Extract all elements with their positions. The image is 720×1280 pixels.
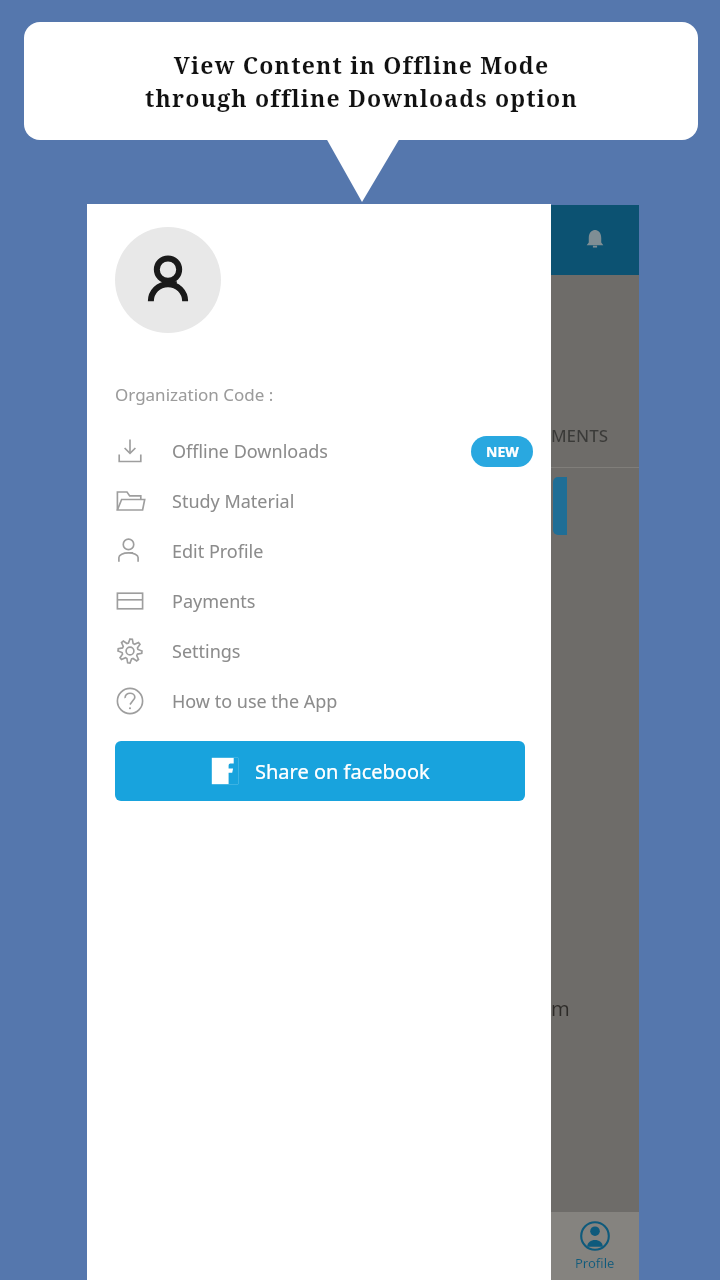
button[interactable]: Profile photo [115,227,221,333]
button[interactable]: Settings [87,626,551,676]
button[interactable]: Share on facebook [115,741,525,801]
button[interactable]: How to use the App [87,676,551,726]
staticText: How to use the App [172,689,338,714]
staticText: View Content in Offline Mode through off… [145,49,578,114]
staticText: Payments [172,589,256,614]
button[interactable]: Study Material [87,476,551,526]
button[interactable]: Profile [551,1212,639,1280]
staticText: MENTS [551,424,609,447]
button[interactable]: Notifications [551,205,639,275]
staticText: Settings [172,639,241,664]
staticText: m [551,995,570,1021]
staticText: NEW [486,442,519,461]
staticText: Study Material [172,489,295,514]
staticText: Offline Downloads [172,439,328,464]
button[interactable]: Edit Profile [87,526,551,576]
staticText: Share on facebook [255,758,430,785]
staticText: Organization Code : [115,383,274,406]
staticText: Profile [575,1254,615,1272]
staticText: Edit Profile [172,539,264,564]
button[interactable]: Offline Downloads [87,426,551,476]
button[interactable]: Payments [87,576,551,626]
